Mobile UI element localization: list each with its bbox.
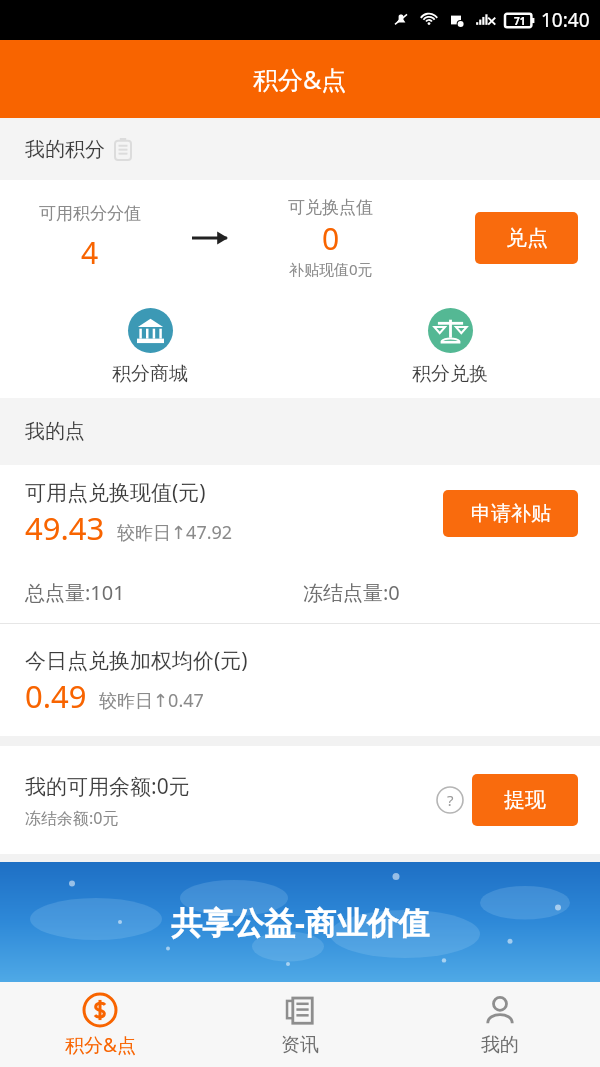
staticText: 补贴现值0元 <box>289 259 373 279</box>
staticText: 可用点兑换现值(元) <box>25 478 206 507</box>
staticText: 较昨日↑0.47 <box>99 688 204 713</box>
staticText: 积分商城 <box>112 362 188 386</box>
staticText: 我的可用余额:0元 <box>25 772 190 801</box>
button[interactable]: 申请补贴 <box>443 490 578 537</box>
staticText: 今日点兑换加权均价(元) <box>25 646 248 675</box>
staticText: 资讯 <box>281 1033 319 1057</box>
staticText: 兑点 <box>506 225 548 251</box>
staticText: 冻结点量:0 <box>303 579 400 606</box>
button[interactable]: 提现 <box>472 774 578 826</box>
staticText: 总点量:101 <box>25 579 125 606</box>
button[interactable]: 我的 <box>400 982 600 1067</box>
staticText: 我的积分 <box>25 137 105 162</box>
staticText: 较昨日↑47.92 <box>117 520 233 545</box>
staticText: 4 <box>81 232 99 273</box>
button[interactable]: 兑点 <box>475 212 578 264</box>
staticText: 49.43 <box>25 507 105 549</box>
staticText: 积分兑换 <box>412 362 488 386</box>
button[interactable]: 积分&点 <box>0 982 200 1067</box>
staticText: 我的 <box>481 1033 519 1057</box>
staticText: 共享公益-商业价值 <box>171 901 429 943</box>
staticText: 积分&点 <box>253 62 347 96</box>
button[interactable]: 积分兑换 <box>300 295 600 398</box>
button[interactable]: 共享公益-商业价值 <box>0 862 600 982</box>
button[interactable]: 积分商城 <box>0 295 300 398</box>
staticText: 10:40 <box>541 7 590 33</box>
staticText: 提现 <box>504 787 546 813</box>
staticText: 71 <box>514 14 526 28</box>
staticText: 申请补贴 <box>471 501 551 526</box>
staticText: 0 <box>322 218 340 259</box>
button[interactable]: 帮助 <box>435 785 465 815</box>
button[interactable]: 资讯 <box>200 982 400 1067</box>
staticText: ? <box>447 790 454 810</box>
staticText: 0.49 <box>25 675 87 717</box>
staticText: 冻结余额:0元 <box>25 807 119 829</box>
staticText: 可用积分分值 <box>39 203 141 224</box>
staticText: 可兑换点值 <box>288 197 373 218</box>
staticText: 积分&点 <box>65 1032 136 1058</box>
staticText: 我的点 <box>25 419 85 444</box>
